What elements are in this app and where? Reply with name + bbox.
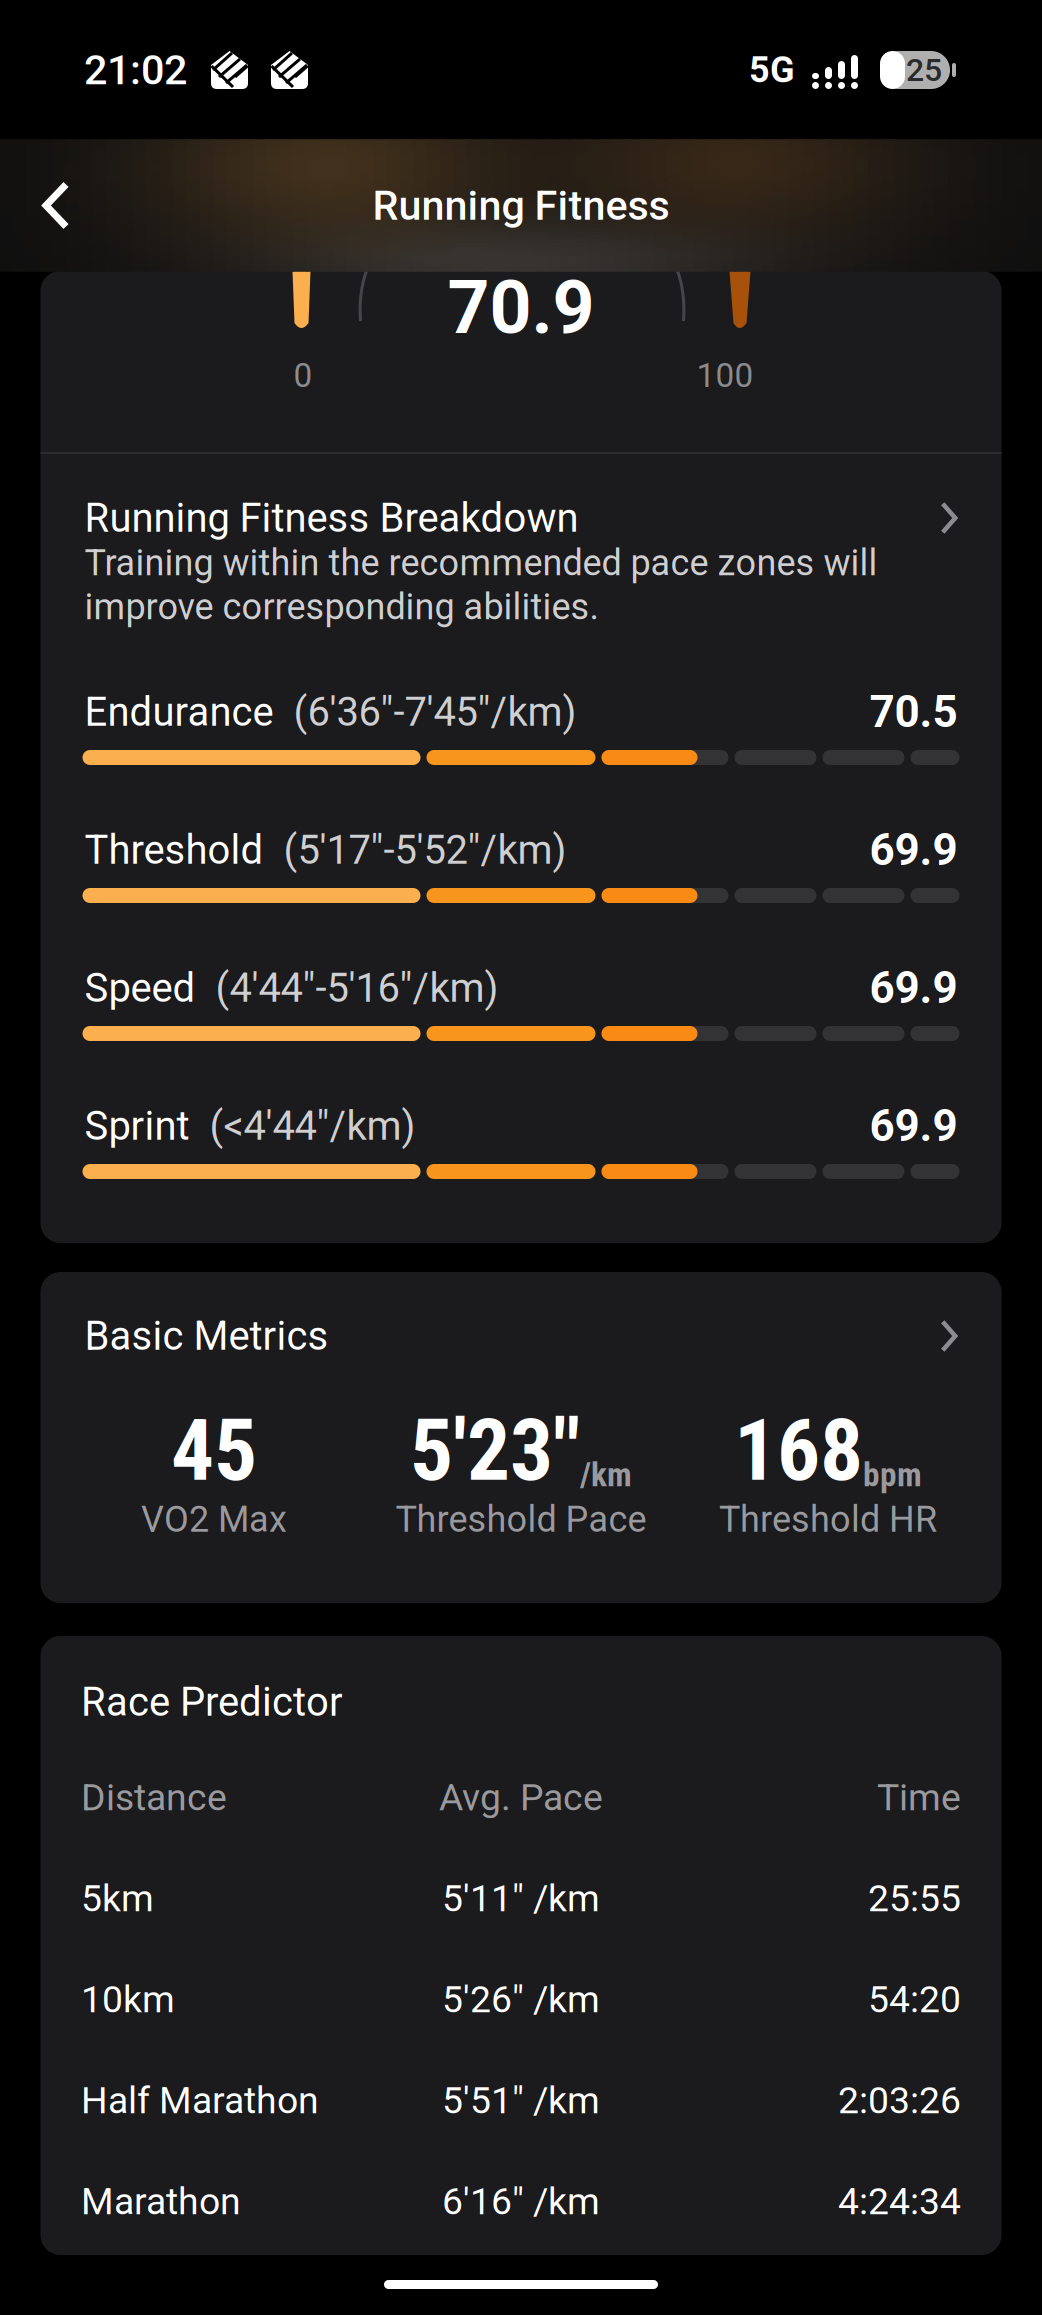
staticText: Time: [877, 1776, 961, 1819]
staticText: Threshold HR: [719, 1498, 937, 1541]
staticText: (5'17"-5'52"/km): [263, 827, 566, 873]
staticText: Threshold Pace: [395, 1498, 646, 1541]
staticText: /km: [580, 1455, 632, 1494]
staticText: 5'51" /km: [442, 2079, 600, 2122]
staticText: 5km: [81, 1877, 154, 1920]
staticText: Distance: [81, 1776, 227, 1819]
staticText: Basic Metrics: [84, 1313, 328, 1359]
staticText: Marathon: [81, 2180, 241, 2223]
staticText: Endurance: [84, 689, 273, 735]
staticText: (<4'44"/km): [189, 1103, 415, 1149]
staticText: Sprint: [84, 1103, 189, 1149]
staticText: Running Fitness Breakdown: [84, 495, 578, 541]
staticText: 70.5: [869, 686, 957, 738]
staticText: VO2 Max: [141, 1498, 287, 1541]
staticText: (4'44"-5'16"/km): [195, 965, 498, 1011]
staticText: 6'16" /km: [442, 2180, 600, 2223]
staticText: 4:24:34: [838, 2180, 961, 2223]
staticText: 5'26" /km: [442, 1978, 600, 2021]
staticText: Running Fitness: [372, 181, 669, 230]
staticText: Training within the recommended pace zon…: [84, 542, 877, 584]
staticText: 10km: [81, 1978, 175, 2021]
staticText: 69.9: [869, 1100, 957, 1152]
staticText: 69.9: [869, 824, 957, 876]
staticText: Threshold: [84, 827, 263, 873]
staticText: 5G: [749, 49, 795, 91]
staticText: improve corresponding abilities.: [84, 586, 598, 628]
staticText: 0: [293, 356, 312, 395]
staticText: 45: [171, 1400, 257, 1500]
staticText: 70.9: [447, 265, 594, 351]
staticText: Avg. Pace: [439, 1776, 603, 1819]
staticText: Speed: [84, 965, 195, 1011]
staticText: 2:03:26: [838, 2079, 961, 2122]
staticText: 21:02: [84, 46, 187, 94]
staticText: Half Marathon: [81, 2079, 319, 2122]
staticText: 25: [906, 51, 942, 89]
staticText: (6'36"-7'45"/km): [273, 689, 576, 735]
staticText: 100: [696, 356, 753, 395]
staticText: bpm: [863, 1455, 922, 1494]
staticText: 168: [734, 1400, 863, 1500]
staticText: 54:20: [868, 1978, 961, 2021]
staticText: 5'11" /km: [442, 1877, 600, 1920]
staticText: 69.9: [869, 962, 957, 1014]
button[interactable]: Back: [0, 140, 112, 271]
staticText: Race Predictor: [81, 1679, 343, 1725]
staticText: 5'23": [410, 1400, 580, 1500]
staticText: 25:55: [868, 1877, 961, 1920]
